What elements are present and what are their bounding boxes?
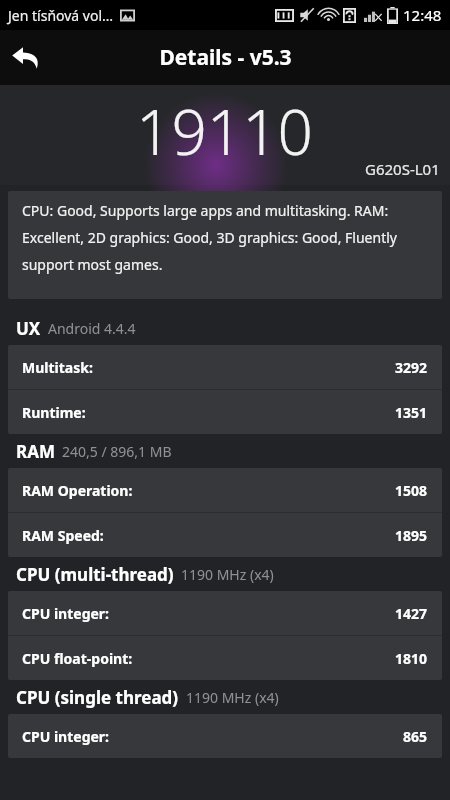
button[interactable]: CPU: Good, Supports large apps and multi… bbox=[8, 191, 442, 299]
button[interactable]: CPU integer: bbox=[8, 591, 442, 635]
staticText: 1190 MHz (x4) bbox=[186, 688, 279, 707]
staticText: 240,5 / 896,1 MB bbox=[62, 442, 172, 461]
staticText: 1190 MHz (x4) bbox=[181, 565, 274, 584]
staticText: 1508 bbox=[395, 481, 428, 500]
staticText: CPU float-point: bbox=[22, 649, 133, 668]
staticText: 12:48 bbox=[403, 5, 442, 25]
staticText: 3292 bbox=[395, 358, 428, 377]
staticText: Android 4.4.4 bbox=[48, 319, 136, 338]
staticText: 1810 bbox=[395, 649, 428, 668]
staticText: 19110 bbox=[136, 89, 314, 173]
button[interactable]: Runtime: bbox=[8, 390, 442, 434]
staticText: Jen tísňová vol… bbox=[8, 6, 114, 25]
button[interactable]: RAM Speed: bbox=[8, 513, 442, 557]
staticText: CPU (multi-thread) bbox=[16, 563, 174, 586]
staticText: 865 bbox=[403, 727, 428, 746]
button[interactable]: CPU integer: bbox=[8, 714, 442, 758]
button[interactable]: RAM Operation: bbox=[8, 468, 442, 512]
button[interactable]: Back bbox=[0, 32, 52, 84]
button[interactable]: Multitask: bbox=[8, 345, 442, 389]
staticText: 1351 bbox=[395, 403, 428, 422]
staticText: UX bbox=[16, 317, 41, 340]
staticText: 1427 bbox=[395, 604, 428, 623]
staticText: Details - v5.3 bbox=[159, 43, 292, 72]
button[interactable]: CPU float-point: bbox=[8, 636, 442, 680]
staticText: RAM bbox=[16, 440, 55, 463]
staticText: RAM Operation: bbox=[22, 481, 133, 500]
staticText: CPU (single thread) bbox=[16, 686, 179, 709]
staticText: CPU integer: bbox=[22, 727, 110, 746]
staticText: CPU integer: bbox=[22, 604, 110, 623]
staticText: Multitask: bbox=[22, 358, 93, 377]
staticText: Runtime: bbox=[22, 403, 86, 422]
staticText: G620S-L01 bbox=[365, 159, 440, 179]
staticText: CPU: Good, Supports large apps and multi… bbox=[22, 201, 428, 274]
staticText: RAM Speed: bbox=[22, 526, 104, 545]
staticText: 1895 bbox=[395, 526, 428, 545]
